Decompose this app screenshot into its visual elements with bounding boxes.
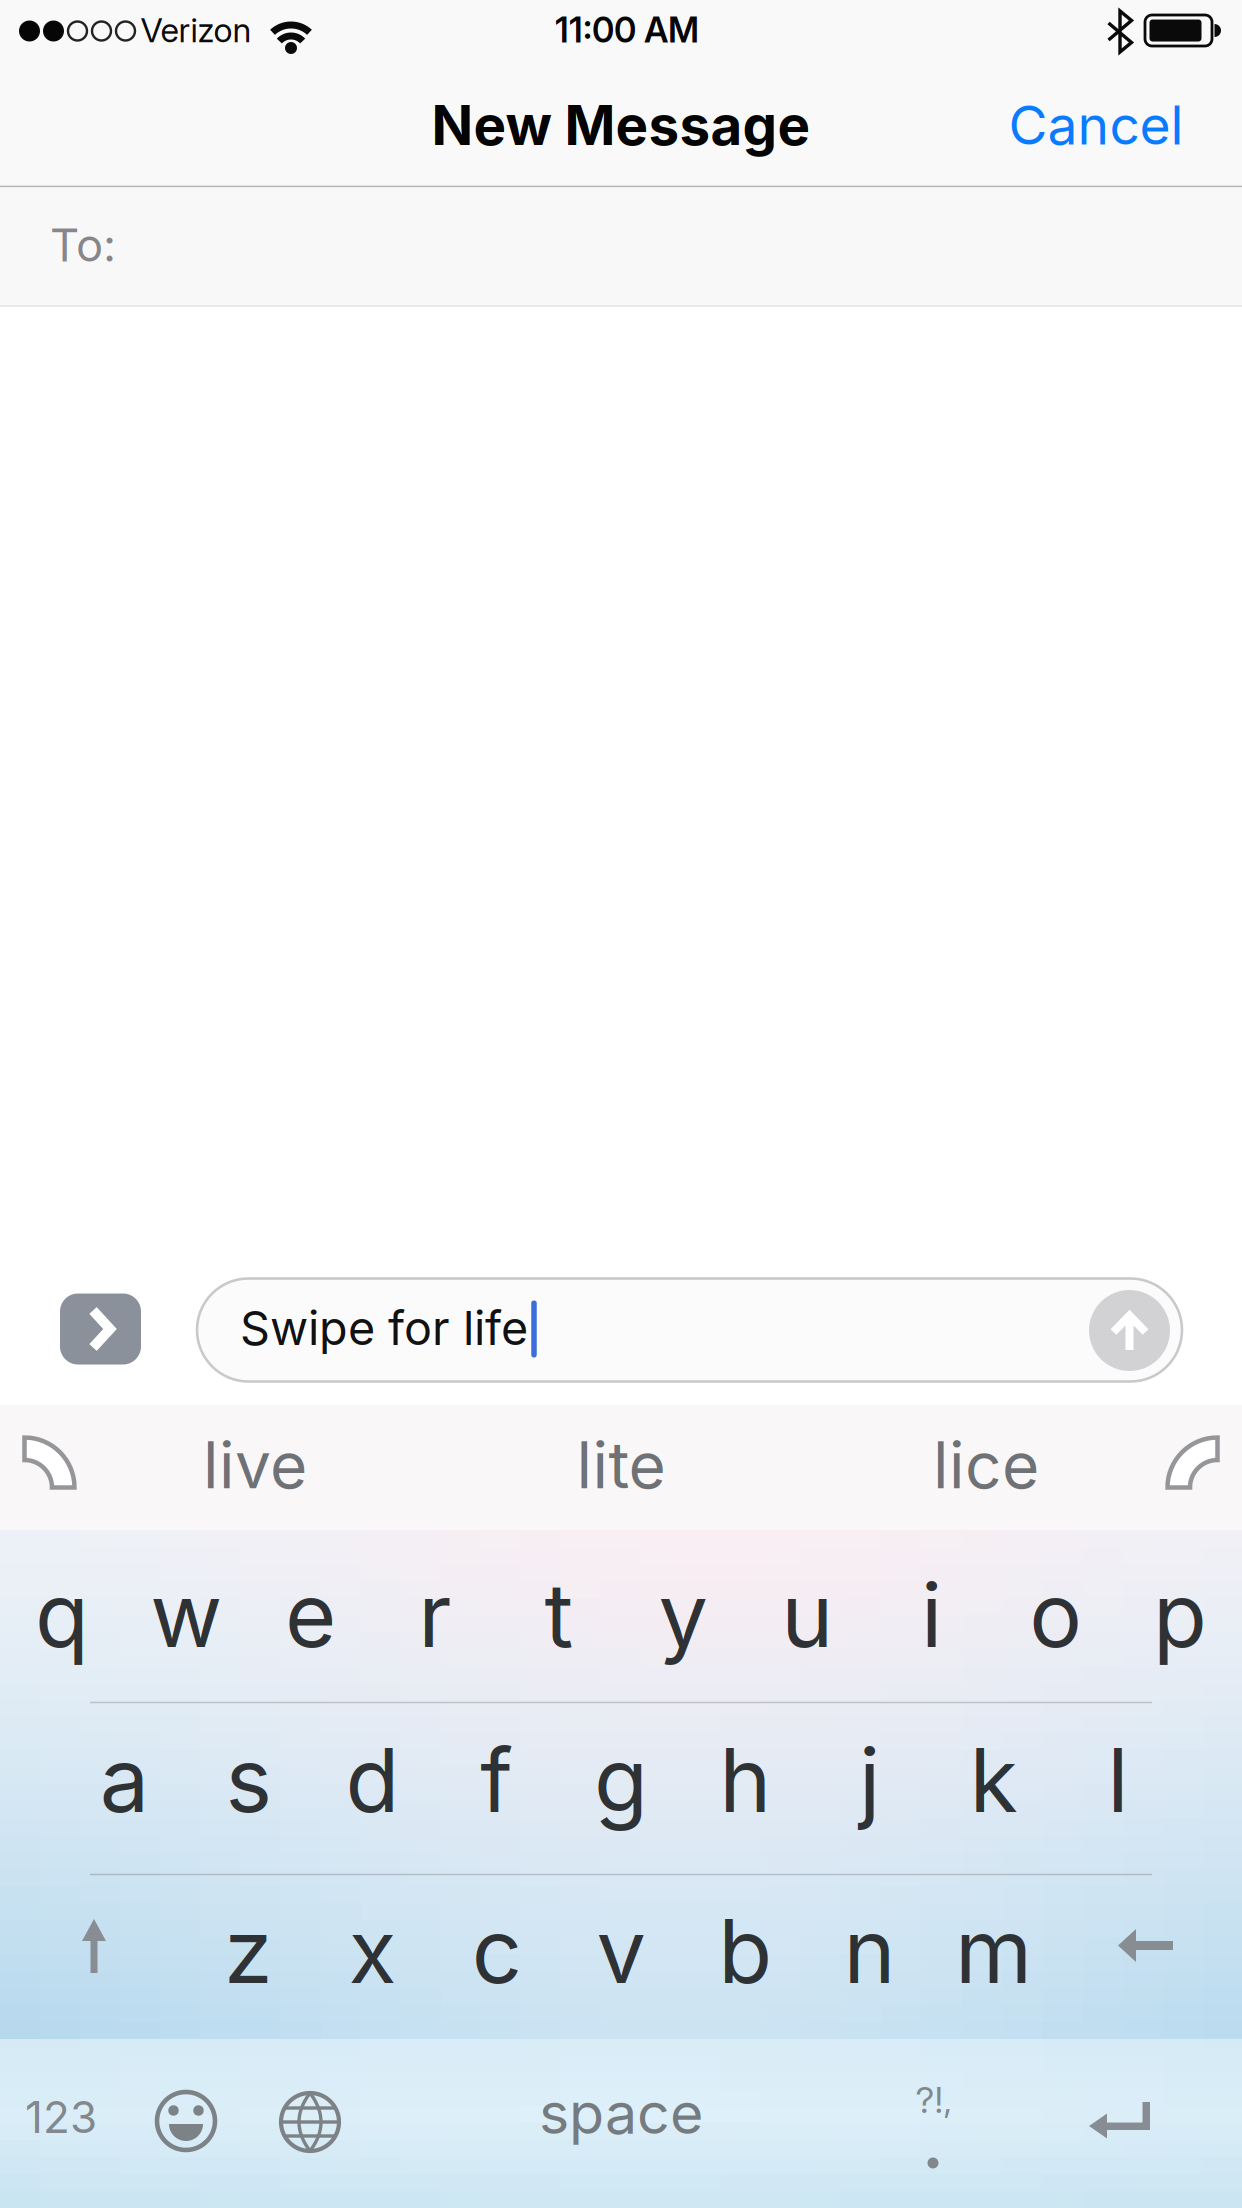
staticText: lice (933, 1427, 1039, 1503)
button[interactable]: Delete (1086, 1866, 1210, 2026)
staticText: Verizon (140, 10, 251, 50)
staticText: Swipe for life (240, 1300, 528, 1356)
staticText: Cancel (1008, 93, 1183, 156)
staticText: x (349, 1899, 397, 2003)
staticText: b (718, 1899, 772, 2003)
button[interactable]: Shift (32, 1866, 156, 2026)
staticText: s (225, 1728, 271, 1832)
button[interactable]: c (435, 1871, 559, 2031)
button[interactable]: s (186, 1697, 310, 1863)
staticText: r (418, 1563, 451, 1667)
staticText: j (859, 1728, 880, 1832)
staticText: h (719, 1728, 771, 1832)
button[interactable]: One-handed keyboard right (1157, 1423, 1237, 1503)
button[interactable]: 123 (0, 2042, 123, 2192)
button[interactable]: b (683, 1871, 807, 2031)
staticText: n (843, 1899, 895, 2003)
button[interactable]: live (105, 1409, 405, 1521)
button[interactable]: q (0, 1532, 124, 1698)
button[interactable]: Emoji (131, 2051, 241, 2191)
staticText: q (35, 1563, 89, 1667)
staticText: f (480, 1728, 513, 1832)
staticText: c (472, 1899, 522, 2003)
button[interactable]: Next keyboard (255, 2052, 365, 2192)
button[interactable]: u (745, 1532, 869, 1698)
button[interactable]: z (186, 1871, 310, 2031)
button[interactable]: x (311, 1871, 435, 2031)
button[interactable]: g (559, 1697, 683, 1863)
button[interactable]: App drawer (60, 1293, 141, 1364)
staticText: u (781, 1563, 833, 1667)
staticText: space (539, 2079, 703, 2147)
button[interactable]: lite (471, 1409, 771, 1521)
staticText: p (1153, 1563, 1207, 1667)
button[interactable]: r (373, 1532, 497, 1698)
staticText: d (346, 1728, 400, 1832)
button[interactable]: p (1118, 1532, 1242, 1698)
staticText: e (285, 1563, 336, 1667)
button[interactable]: h (683, 1697, 807, 1863)
button[interactable]: One-handed keyboard left (5, 1423, 85, 1503)
staticText: o (1029, 1563, 1082, 1667)
staticText: t (544, 1563, 573, 1667)
button[interactable]: w (124, 1532, 248, 1698)
button[interactable]: f (435, 1697, 559, 1863)
staticText: l (1107, 1728, 1128, 1832)
staticText: live (203, 1427, 307, 1503)
button[interactable]: e (248, 1532, 372, 1698)
button[interactable]: Punctuation (871, 2042, 995, 2202)
staticText: ?!, (915, 2079, 952, 2121)
button[interactable]: m (932, 1871, 1056, 2031)
staticText: g (594, 1728, 648, 1832)
button[interactable]: Cancel (971, 75, 1221, 175)
button[interactable]: y (621, 1532, 745, 1698)
button[interactable]: i (869, 1532, 993, 1698)
staticText: w (150, 1563, 222, 1667)
button[interactable]: j (807, 1697, 931, 1863)
staticText: lite (576, 1427, 665, 1503)
button[interactable]: v (559, 1871, 683, 2031)
staticText: New Message (431, 93, 810, 157)
button[interactable]: o (994, 1532, 1118, 1698)
staticText: k (970, 1728, 1018, 1832)
staticText: a (100, 1728, 149, 1832)
button[interactable]: k (932, 1697, 1056, 1863)
button[interactable]: Send (1089, 1290, 1170, 1371)
button[interactable]: d (311, 1697, 435, 1863)
button[interactable]: lice (836, 1409, 1136, 1521)
button[interactable]: space (411, 2038, 831, 2188)
staticText: i (921, 1563, 942, 1667)
staticText: y (659, 1563, 708, 1667)
staticText: z (224, 1899, 273, 2003)
button[interactable]: t (497, 1532, 621, 1698)
button[interactable]: l (1056, 1697, 1180, 1863)
button[interactable]: a (62, 1697, 186, 1863)
staticText: 123 (25, 2091, 97, 2143)
button[interactable]: n (807, 1871, 931, 2031)
staticText: m (955, 1899, 1032, 2003)
staticText: v (596, 1899, 645, 2003)
staticText: 11:00 AM (555, 10, 699, 50)
button[interactable]: Return (1043, 2042, 1193, 2202)
staticText: To: (50, 218, 116, 272)
